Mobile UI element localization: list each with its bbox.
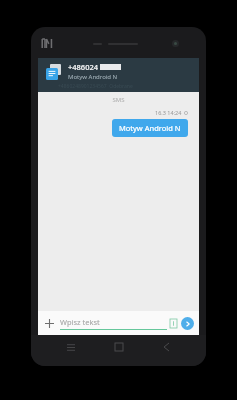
button[interactable]: Home (111, 339, 127, 355)
button[interactable]: Character counter (170, 319, 177, 328)
staticText: +4860248901234567 Odebrane (58, 83, 133, 90)
staticText: 16.3 14:24 (155, 109, 182, 116)
staticText: Motyw Android N (119, 123, 181, 133)
button[interactable]: Back (158, 339, 174, 355)
button[interactable]: Send (181, 317, 194, 330)
button[interactable]: Recents (63, 339, 79, 355)
button[interactable]: Wpisz tekst (60, 316, 167, 330)
button[interactable]: Add attachment (43, 317, 56, 330)
button[interactable]: +486024 (38, 58, 199, 92)
staticText: +486024 (68, 62, 99, 72)
staticText: SMS (38, 96, 199, 104)
staticText: Wpisz tekst (60, 317, 100, 327)
staticText: Motyw Android N (68, 73, 118, 81)
button[interactable]: Motyw Android N (112, 119, 188, 137)
